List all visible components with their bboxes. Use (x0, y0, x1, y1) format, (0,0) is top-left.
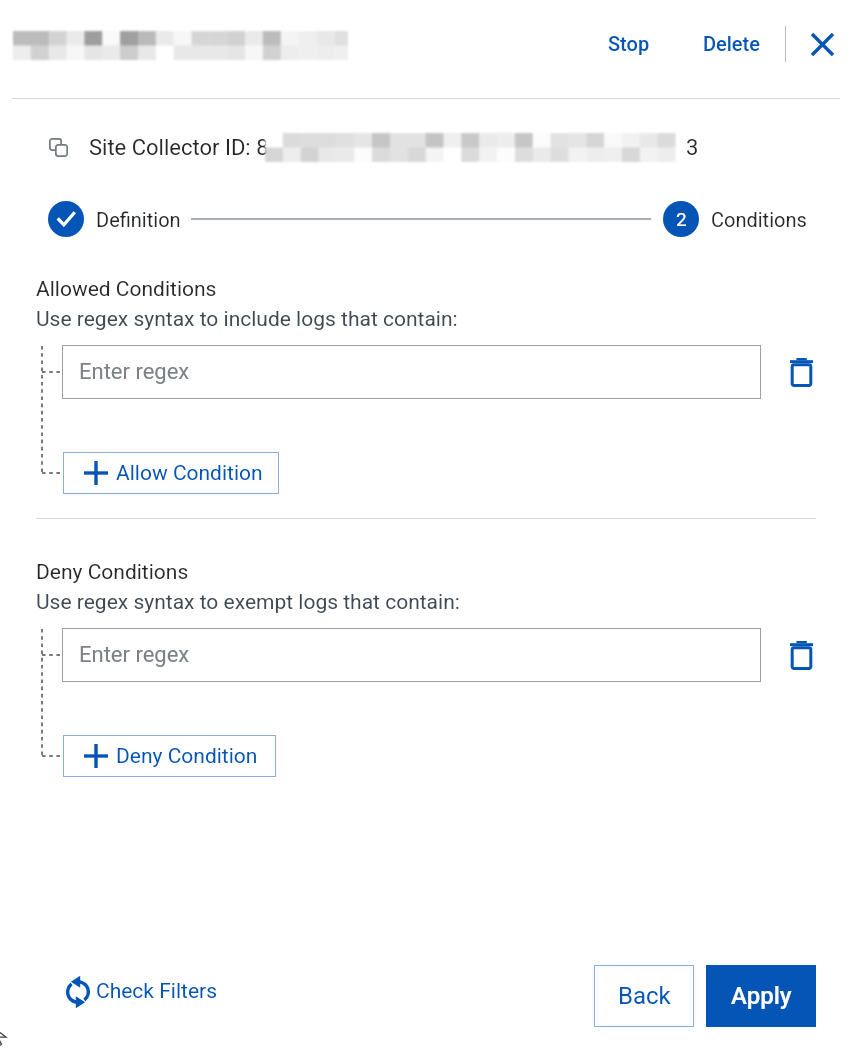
button[interactable]: Stop (589, 19, 668, 68)
staticText: Definition (96, 208, 181, 231)
button[interactable]: Close (798, 20, 846, 68)
staticText: Apply (731, 982, 792, 1010)
staticText: 2 (676, 208, 687, 230)
staticText: Site Collector ID: 8 (89, 135, 269, 161)
button[interactable]: Conditions step (663, 201, 699, 237)
staticText: Conditions (711, 208, 807, 231)
staticText: Stop (608, 32, 650, 55)
button[interactable]: Delete allow condition (779, 345, 823, 399)
staticText: Delete (703, 32, 760, 55)
button[interactable]: Copy ID (49, 138, 68, 157)
button[interactable]: Back (594, 965, 694, 1027)
staticText: Back (618, 982, 671, 1010)
staticText: Check Filters (96, 979, 217, 1004)
button[interactable]: Allow Condition (63, 452, 279, 494)
staticText: Allow Condition (116, 461, 263, 486)
staticText: Enter regex (79, 642, 190, 668)
button[interactable]: Check Filters (66, 968, 217, 1015)
button[interactable]: Delete deny condition (779, 628, 823, 682)
button[interactable]: Enter regex (62, 628, 761, 682)
staticText: Allowed Conditions (36, 277, 217, 302)
staticText: Enter regex (79, 359, 190, 385)
staticText: 3 (686, 135, 699, 161)
staticText: Deny Condition (116, 744, 258, 769)
button[interactable]: Enter regex (62, 345, 761, 399)
button[interactable]: Apply (706, 965, 816, 1027)
button[interactable]: Delete (684, 19, 778, 68)
staticText: Use regex syntax to include logs that co… (36, 307, 458, 332)
button[interactable]: Definition step complete (48, 201, 84, 237)
button[interactable]: Deny Condition (63, 735, 276, 777)
staticText: Deny Conditions (36, 560, 189, 585)
staticText: Use regex syntax to exempt logs that con… (36, 590, 460, 615)
